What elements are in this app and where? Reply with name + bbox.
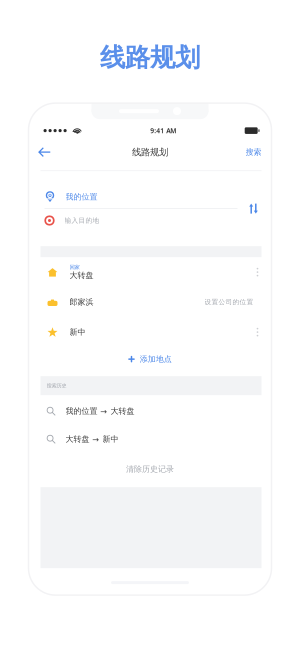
button[interactable]: 大转盘 → 新中 [28, 425, 271, 453]
staticText: 输入目的地 [64, 216, 99, 225]
staticText: 清除历史记录 [126, 464, 174, 474]
button[interactable]: 添加地点 [28, 347, 271, 371]
staticText: 郎家浜 [69, 297, 93, 307]
staticText: 设置公司的位置 [204, 298, 253, 306]
button[interactable]: 搜索 [235, 140, 271, 164]
button[interactable]: Swap origin and destination [239, 185, 266, 232]
button[interactable]: 郎家浜 [28, 287, 271, 317]
staticText: 9:41 AM [150, 126, 176, 135]
staticText: 线路规划 [132, 146, 168, 158]
staticText: 我的位置 → 大转盘 [65, 406, 134, 416]
button[interactable]: 回家 [28, 257, 271, 287]
button[interactable]: 新中 [28, 317, 271, 347]
button[interactable]: 我的位置 → 大转盘 [28, 397, 271, 425]
button[interactable]: 我的位置 [44, 185, 239, 208]
staticText: 大转盘 → 新中 [65, 434, 118, 444]
staticText: 添加地点 [140, 354, 172, 364]
staticText: 线路规划 [100, 42, 200, 73]
staticText: 搜索 [245, 147, 261, 157]
button[interactable]: 输入目的地 [44, 209, 239, 232]
staticText: 新中 [69, 327, 85, 337]
staticText: 搜索历史 [46, 382, 66, 389]
staticText: 我的位置 [65, 192, 97, 202]
button[interactable]: 清除历史记录 [28, 453, 271, 485]
button[interactable]: Back [28, 140, 60, 164]
staticText: 大转盘 [69, 270, 93, 280]
staticText: 回家 [69, 264, 79, 270]
